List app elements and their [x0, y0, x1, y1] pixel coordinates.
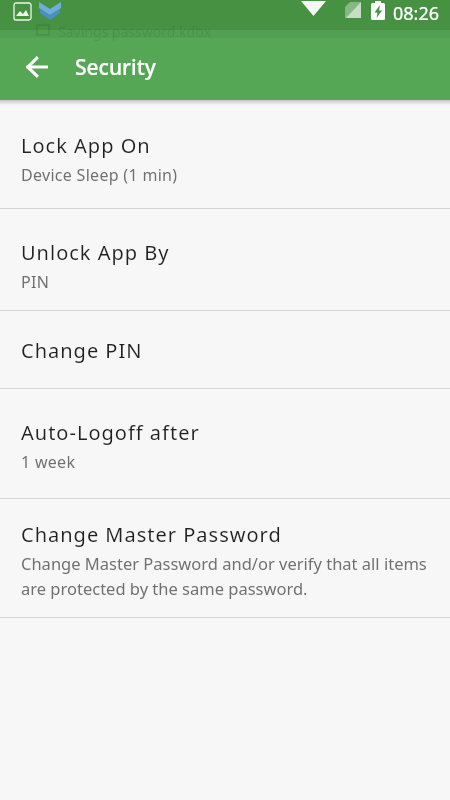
button[interactable]: Unlock App By — [0, 209, 450, 310]
button[interactable]: Auto-Logoff after — [0, 389, 450, 498]
button[interactable]: Lock App On — [0, 100, 450, 208]
button[interactable]: Change PIN — [0, 311, 450, 388]
staticText: Auto-Logoff after — [21, 419, 200, 446]
staticText: Device Sleep (1 min) — [21, 164, 178, 186]
staticText: Savings password.kdbx — [58, 22, 211, 41]
button[interactable] — [14, 48, 64, 86]
staticText: Change PIN — [21, 337, 143, 364]
staticText: Unlock App By — [21, 239, 170, 266]
button[interactable]: Change Master Password — [0, 499, 450, 617]
staticText: Lock App On — [21, 132, 151, 159]
staticText: 1 week — [21, 451, 76, 473]
staticText: Security — [75, 53, 156, 82]
staticText: PIN — [21, 271, 50, 293]
staticText: Change Master Password — [21, 521, 282, 548]
staticText: Change Master Password and/or verify tha… — [21, 552, 427, 599]
staticText: 08:26 — [393, 1, 440, 26]
